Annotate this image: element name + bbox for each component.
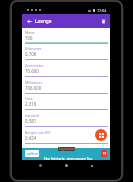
- staticText: 706: [25, 35, 33, 41]
- staticText: 0,381: [25, 118, 37, 124]
- button[interactable]: Bergen von Rill: [22, 128, 110, 145]
- button[interactable]: Calculator: [95, 129, 107, 141]
- button[interactable]: Recents: [88, 162, 95, 169]
- button[interactable]: oeffnen: [22, 148, 110, 160]
- staticText: Bergen von Rill: [25, 130, 51, 135]
- button[interactable]: Zentimeter: [22, 61, 110, 78]
- button[interactable]: Back: [37, 162, 44, 169]
- staticText: nautisch: [25, 113, 40, 118]
- staticText: oeffnen: [27, 152, 38, 156]
- staticText: Fuss: [25, 96, 33, 101]
- staticText: 2.316: [25, 101, 37, 107]
- button[interactable]: Back: [25, 17, 34, 26]
- staticText: Eine Fahrkarte - einen ganzen Tag.: [44, 157, 93, 161]
- staticText: Millimeter: [25, 80, 43, 85]
- button[interactable]: Millimeter: [22, 78, 110, 95]
- button[interactable]: Delete: [99, 17, 108, 26]
- staticText: 0,424: [25, 135, 37, 141]
- button[interactable]: Meter: [22, 28, 110, 45]
- button[interactable]: Fuss: [22, 94, 110, 111]
- button[interactable]: Kilometer: [22, 44, 110, 61]
- staticText: Zentimeter: [25, 63, 44, 68]
- staticText: Meter: [25, 30, 36, 35]
- staticText: 0,706: [25, 51, 37, 57]
- staticText: 706.000: [25, 85, 42, 91]
- staticText: Kilometer: [25, 46, 42, 51]
- staticText: Tagesticket: [59, 147, 75, 151]
- staticText: 70.600: [25, 68, 39, 74]
- staticText: Laenge: [35, 18, 52, 25]
- button[interactable]: Home: [63, 162, 70, 169]
- button[interactable]: nautisch: [22, 111, 110, 128]
- staticText: 17:04: [97, 8, 107, 13]
